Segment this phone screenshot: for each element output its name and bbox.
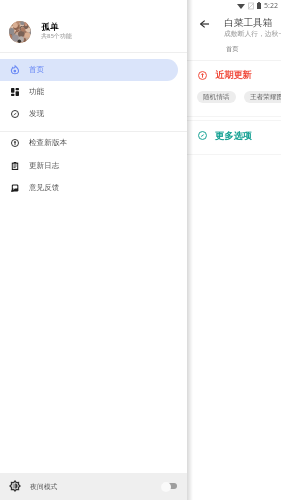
staticText: 夜间模式 <box>30 482 58 491</box>
staticText: 检查新版本 <box>29 138 67 148</box>
button[interactable]: 功能 <box>0 81 178 103</box>
button[interactable]: 检查新版本 <box>0 132 178 154</box>
staticText: 共85个功能 <box>41 32 72 40</box>
staticText: 白菜工具箱 <box>224 17 273 29</box>
button[interactable]: 发现 <box>0 103 178 125</box>
staticText: 意见反馈 <box>29 183 60 193</box>
button[interactable]: 首页 <box>0 59 178 81</box>
staticText: 王者荣耀图标 <box>250 93 281 101</box>
staticText: 发现 <box>29 109 45 119</box>
button[interactable]: 孤单 <box>0 0 187 52</box>
staticText: 随机情话 <box>203 93 230 101</box>
staticText: 更新日志 <box>29 161 60 171</box>
staticText: 孤单 <box>41 21 59 32</box>
staticText: 首页 <box>226 45 239 53</box>
staticText: 首页 <box>29 65 45 75</box>
button[interactable]: Back <box>195 15 213 33</box>
button[interactable]: 首页 <box>219 40 245 58</box>
staticText: 成敷断人行，边秋一雁声 <box>224 29 281 38</box>
button[interactable]: 随机情话 <box>197 91 236 103</box>
staticText: 功能 <box>29 87 45 97</box>
button[interactable]: 王者荣耀图标 <box>244 91 281 103</box>
staticText: 5:22 <box>264 1 278 11</box>
button[interactable]: 近期更新 <box>215 69 252 81</box>
button[interactable]: 夜间模式 <box>0 473 187 500</box>
button[interactable]: 更新日志 <box>0 155 178 177</box>
button[interactable]: 更多选项 <box>215 130 252 142</box>
button[interactable]: 意见反馈 <box>0 177 178 199</box>
